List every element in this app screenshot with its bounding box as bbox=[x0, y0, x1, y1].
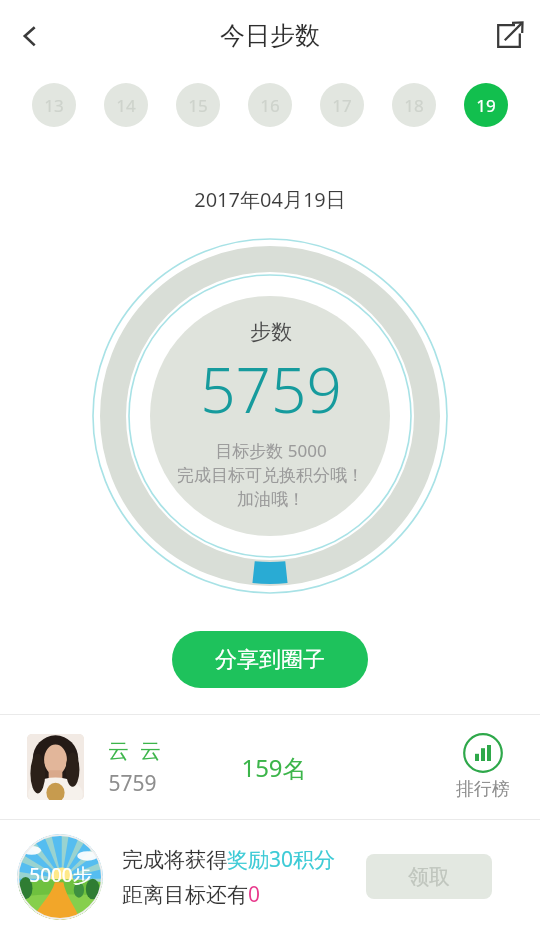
button[interactable]: 18 bbox=[392, 83, 436, 127]
staticText: 领取 bbox=[408, 864, 450, 890]
button[interactable]: 13 bbox=[32, 83, 76, 127]
button[interactable]: 排行榜 bbox=[456, 733, 510, 801]
staticText: 加油哦！ bbox=[237, 489, 305, 510]
staticText: 完成将获得奖励30积分 bbox=[122, 845, 336, 874]
staticText: 目标步数 5000 bbox=[215, 439, 327, 462]
button[interactable]: 16 bbox=[248, 83, 292, 127]
button[interactable]: 分享到圈子 bbox=[172, 631, 368, 688]
staticText: 13 bbox=[44, 94, 64, 117]
staticText: 16 bbox=[260, 94, 280, 117]
staticText: 今日步数 bbox=[220, 20, 320, 51]
button[interactable]: 云 云 bbox=[0, 715, 540, 819]
button[interactable]: Back bbox=[0, 6, 60, 66]
staticText: 2017年04月19日 bbox=[194, 186, 346, 213]
button[interactable]: 17 bbox=[320, 83, 364, 127]
button[interactable]: 14 bbox=[104, 83, 148, 127]
staticText: 步数 bbox=[250, 319, 292, 345]
staticText: 14 bbox=[116, 94, 136, 117]
staticText: 159名 bbox=[241, 751, 307, 784]
staticText: 18 bbox=[404, 94, 424, 117]
staticText: 5000步 bbox=[29, 862, 92, 888]
button[interactable]: 领取 bbox=[366, 854, 492, 899]
staticText: 5759 bbox=[200, 347, 342, 431]
staticText: 19 bbox=[476, 94, 496, 117]
button[interactable]: 15 bbox=[176, 83, 220, 127]
staticText: 15 bbox=[188, 94, 208, 117]
staticText: 17 bbox=[332, 94, 352, 117]
staticText: 排行榜 bbox=[456, 778, 510, 801]
staticText: 距离目标还有0 bbox=[122, 880, 261, 909]
staticText: 分享到圈子 bbox=[215, 646, 325, 674]
button[interactable]: Share bbox=[478, 6, 540, 66]
button[interactable]: 19 bbox=[464, 83, 508, 127]
staticText: 完成目标可兑换积分哦！ bbox=[177, 465, 364, 486]
staticText: 5759 bbox=[108, 769, 157, 798]
staticText: 云 云 bbox=[108, 736, 161, 765]
